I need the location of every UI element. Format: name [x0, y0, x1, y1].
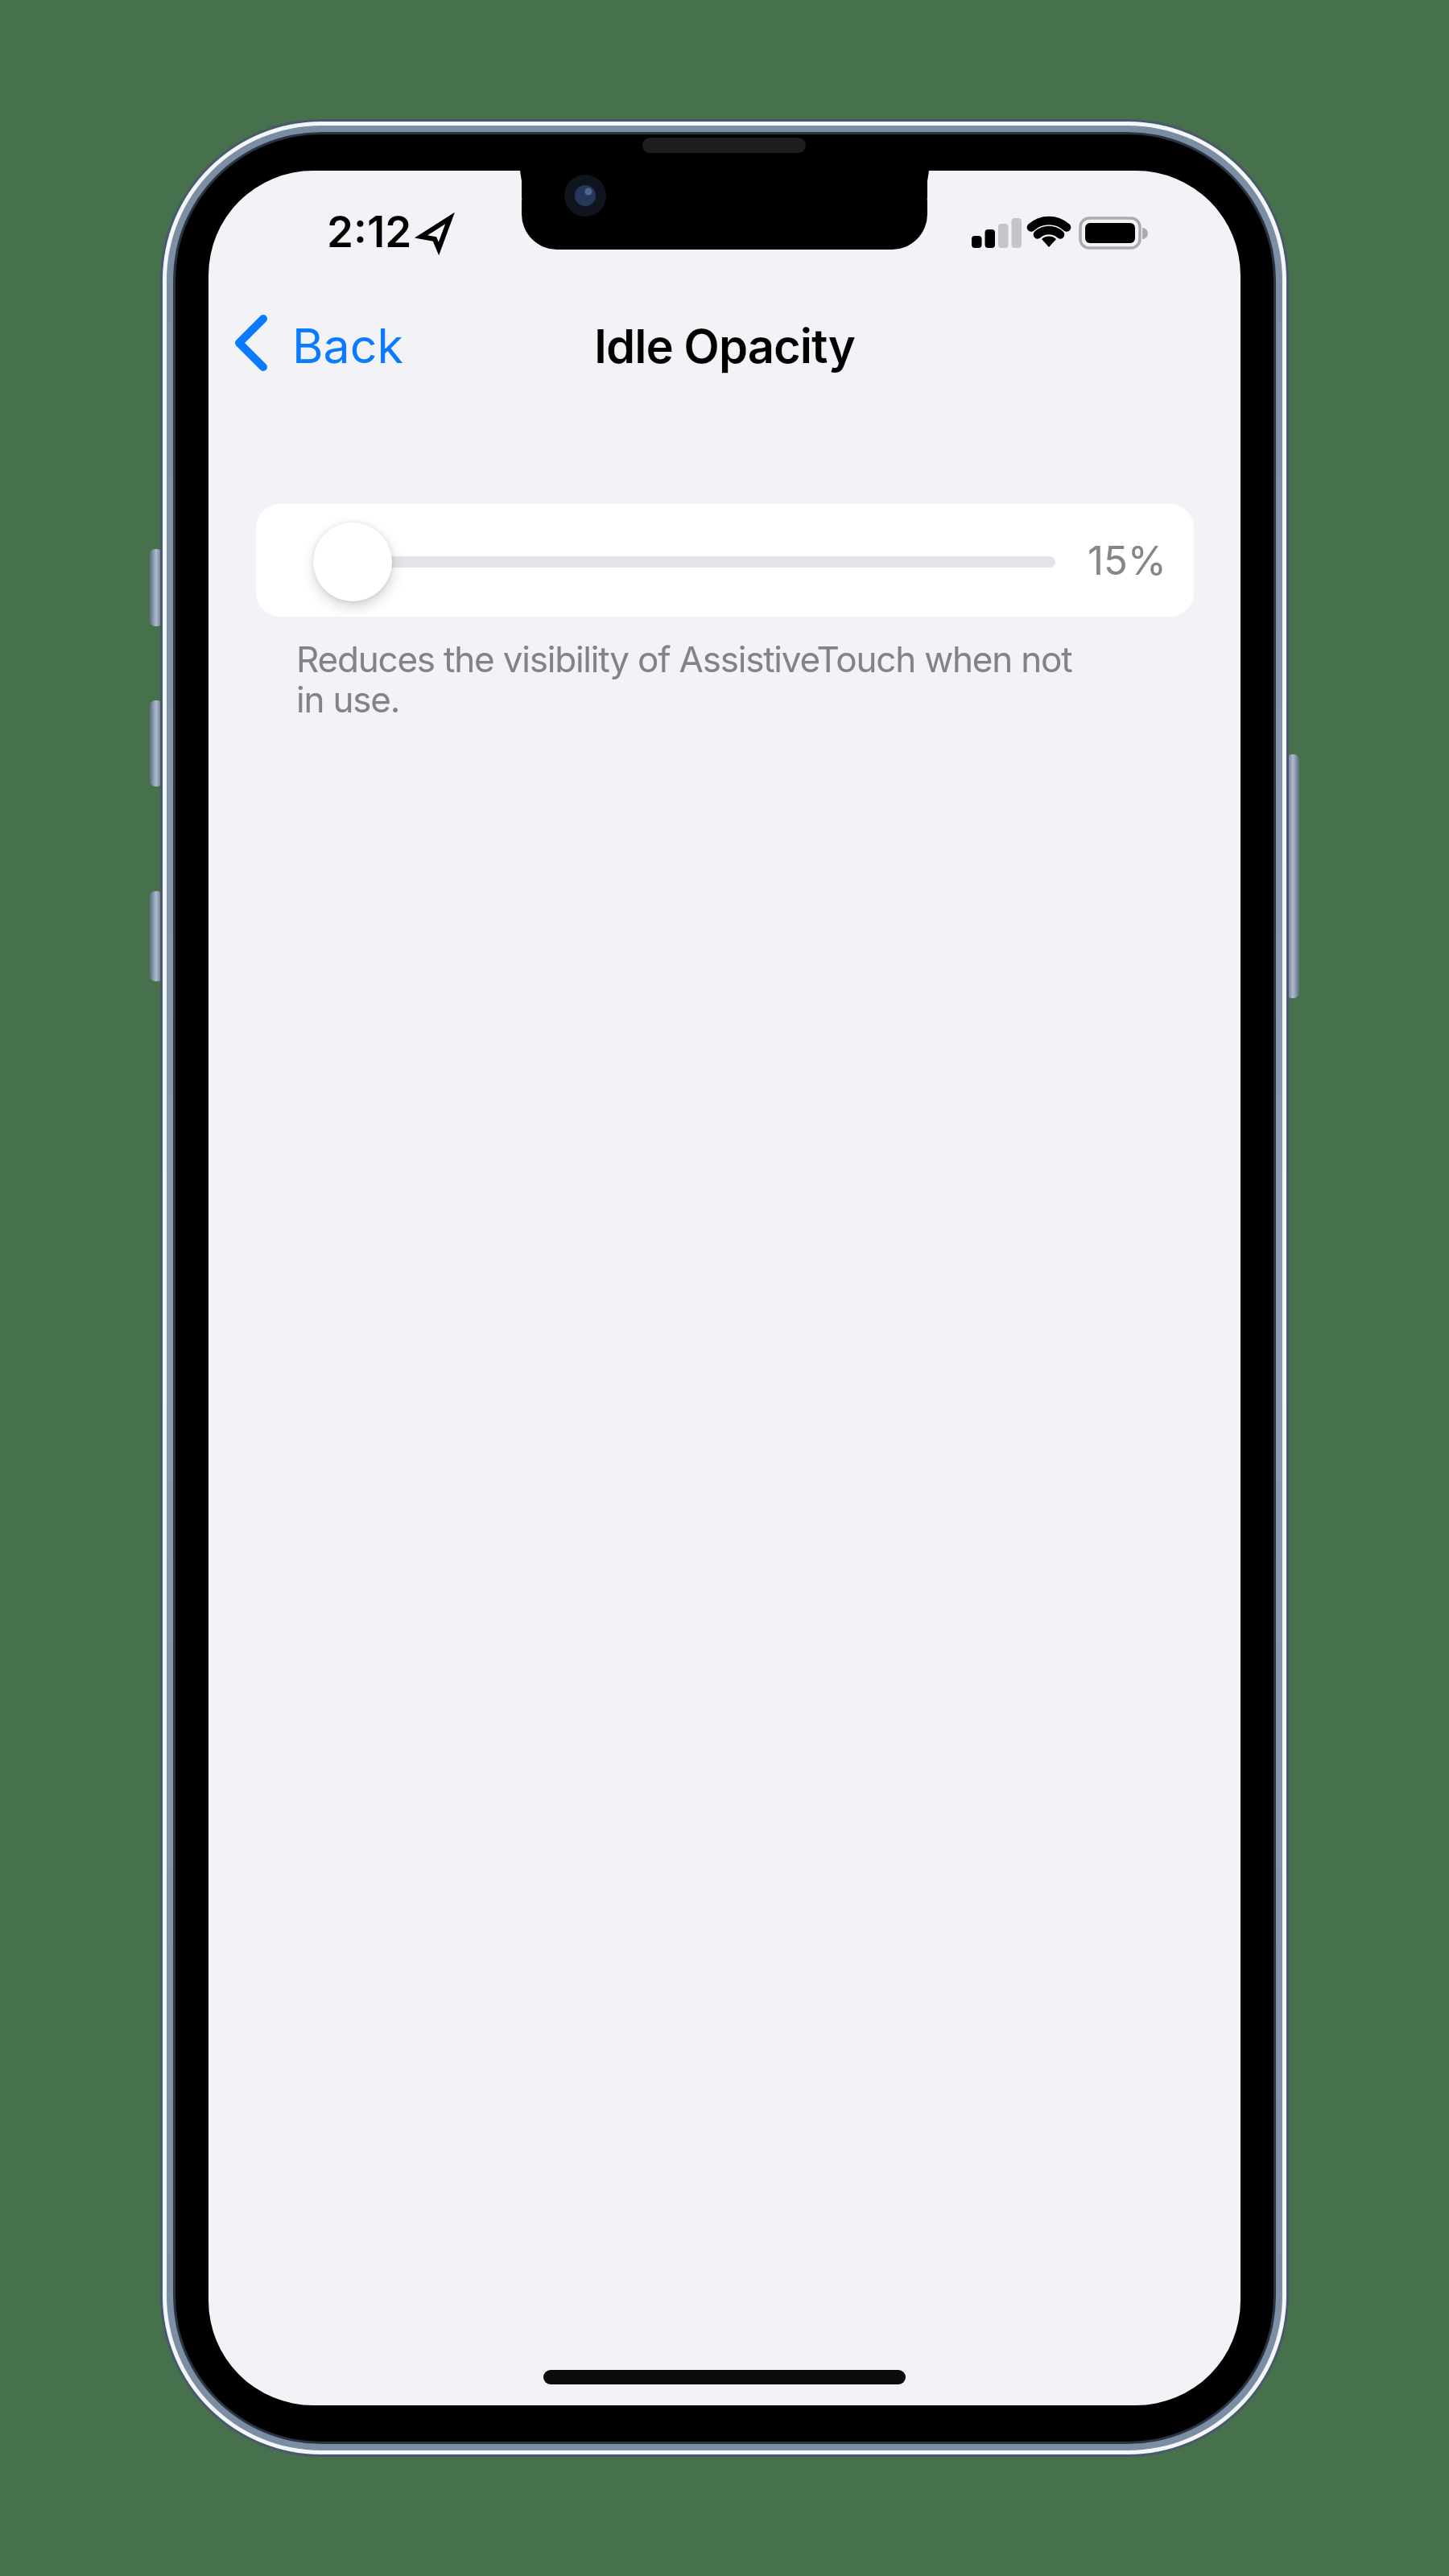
- staticText: Idle Opacity: [594, 318, 855, 374]
- button[interactable]: Back: [229, 316, 402, 376]
- staticText: Reduces the visibility of AssistiveTouch…: [296, 638, 1072, 721]
- button[interactable]: [543, 2370, 906, 2384]
- staticText: 15%: [1088, 537, 1166, 584]
- button[interactable]: 15%: [256, 504, 1194, 617]
- staticText: 2:12: [327, 206, 412, 253]
- button[interactable]: [313, 522, 392, 601]
- staticText: Back: [292, 317, 403, 374]
